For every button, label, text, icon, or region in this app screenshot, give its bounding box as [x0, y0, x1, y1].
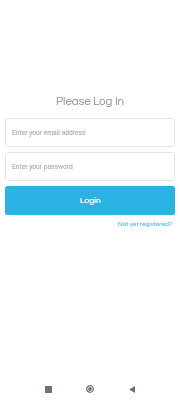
staticText: Enter your password	[12, 163, 73, 171]
button[interactable]: Enter your password	[5, 152, 175, 181]
button[interactable]: Not yet registered?	[118, 221, 173, 228]
button[interactable]: Home	[76, 378, 104, 400]
button[interactable]: Back	[118, 378, 146, 400]
staticText: Login	[80, 196, 101, 205]
button[interactable]: Enter your email address	[5, 118, 175, 147]
staticText: Please Log In	[0, 96, 180, 108]
staticText: Enter your email address	[12, 129, 86, 137]
button[interactable]: Recents	[34, 378, 62, 400]
button[interactable]: Login	[5, 186, 175, 215]
